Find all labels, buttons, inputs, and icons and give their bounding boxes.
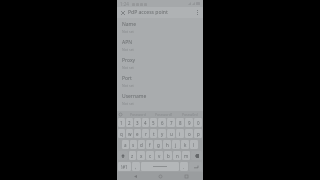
- staticText: h: [166, 142, 169, 148]
- button[interactable]: 1: [118, 118, 125, 127]
- button[interactable]: m: [182, 151, 190, 160]
- staticText: c: [149, 153, 152, 159]
- button[interactable]: Proxy: [117, 54, 203, 72]
- button[interactable]: u: [167, 129, 175, 138]
- staticText: u: [170, 131, 173, 137]
- staticText: Port: [122, 75, 132, 82]
- staticText: 5: [152, 120, 155, 126]
- button[interactable]: .: [180, 162, 188, 171]
- staticText: Password: [130, 112, 146, 117]
- button[interactable]: v: [155, 151, 163, 160]
- staticText: y: [161, 131, 164, 137]
- staticText: 9: [188, 120, 191, 126]
- staticText: Not set: [122, 47, 134, 52]
- staticText: q: [120, 131, 123, 137]
- staticText: k: [184, 142, 187, 148]
- staticText: w: [128, 131, 132, 137]
- button[interactable]: Back: [127, 172, 143, 180]
- staticText: m: [184, 153, 189, 159]
- staticText: .: [183, 164, 185, 170]
- button[interactable]: Password: [124, 111, 151, 117]
- staticText: 6: [161, 120, 164, 126]
- button[interactable]: Close: [117, 7, 128, 18]
- button[interactable]: k: [181, 140, 189, 149]
- staticText: s: [132, 142, 135, 148]
- button[interactable]: Keyboard settings: [117, 111, 124, 117]
- button[interactable]: Shift: [118, 151, 128, 160]
- staticText: Password1: [155, 112, 173, 117]
- button[interactable]: j: [172, 140, 180, 149]
- staticText: 7: [170, 120, 173, 126]
- staticText: Passw0rd: [182, 112, 198, 117]
- button[interactable]: z: [129, 151, 136, 160]
- staticText: 1:24: [120, 1, 129, 7]
- button[interactable]: ,: [132, 162, 140, 171]
- button[interactable]: c: [146, 151, 154, 160]
- button[interactable]: 2: [126, 118, 133, 127]
- button[interactable]: p: [194, 129, 202, 138]
- button[interactable]: q: [118, 129, 125, 138]
- staticText: !#1: [121, 164, 128, 170]
- button[interactable]: Name: [117, 18, 203, 36]
- staticText: f: [149, 142, 151, 148]
- button[interactable]: 3: [134, 118, 141, 127]
- button[interactable]: More options: [192, 7, 203, 18]
- button[interactable]: 6: [158, 118, 166, 127]
- staticText: APN: [122, 39, 133, 46]
- staticText: 8: [179, 120, 182, 126]
- button[interactable]: 0: [194, 118, 202, 127]
- button[interactable]: x: [137, 151, 145, 160]
- button[interactable]: h: [163, 140, 171, 149]
- button[interactable]: i: [176, 129, 184, 138]
- staticText: n: [176, 153, 179, 159]
- staticText: Username: [122, 93, 147, 100]
- staticText: Not set: [122, 83, 134, 88]
- button[interactable]: Username: [117, 90, 203, 108]
- button[interactable]: g: [154, 140, 162, 149]
- staticText: 2: [128, 120, 131, 126]
- button[interactable]: e: [134, 129, 141, 138]
- button[interactable]: Password1: [151, 111, 177, 117]
- staticText: v: [158, 153, 161, 159]
- button[interactable]: b: [164, 151, 172, 160]
- button[interactable]: 5: [150, 118, 157, 127]
- button[interactable]: r: [142, 129, 149, 138]
- button[interactable]: 7: [167, 118, 175, 127]
- button[interactable]: n: [173, 151, 181, 160]
- staticText: Not set: [122, 65, 134, 70]
- button[interactable]: Space: [141, 162, 179, 171]
- staticText: r: [145, 131, 147, 137]
- button[interactable]: Backspace: [191, 151, 202, 160]
- staticText: 3: [136, 120, 139, 126]
- button[interactable]: Recents: [178, 172, 194, 180]
- button[interactable]: 4: [142, 118, 149, 127]
- staticText: j: [175, 142, 177, 148]
- button[interactable]: Passw0rd: [177, 111, 203, 117]
- staticText: ,: [135, 164, 137, 170]
- button[interactable]: t: [150, 129, 157, 138]
- staticText: i: [179, 131, 181, 137]
- staticText: b: [167, 153, 170, 159]
- staticText: 0: [197, 120, 200, 126]
- button[interactable]: APN: [117, 36, 203, 54]
- button[interactable]: o: [185, 129, 193, 138]
- button[interactable]: l: [190, 140, 198, 149]
- staticText: 4: [144, 120, 147, 126]
- staticText: Not set: [122, 29, 134, 34]
- button[interactable]: a: [122, 140, 129, 149]
- button[interactable]: w: [126, 129, 133, 138]
- button[interactable]: d: [138, 140, 145, 149]
- button[interactable]: Port: [117, 72, 203, 90]
- staticText: e: [136, 131, 139, 137]
- button[interactable]: s: [130, 140, 137, 149]
- button[interactable]: 9: [185, 118, 193, 127]
- button[interactable]: 8: [176, 118, 184, 127]
- staticText: a: [124, 142, 127, 148]
- button[interactable]: y: [158, 129, 166, 138]
- staticText: 1: [120, 120, 123, 126]
- button[interactable]: !#1: [118, 162, 131, 171]
- button[interactable]: f: [146, 140, 153, 149]
- button[interactable]: Enter: [189, 162, 202, 171]
- button[interactable]: Home: [152, 172, 168, 180]
